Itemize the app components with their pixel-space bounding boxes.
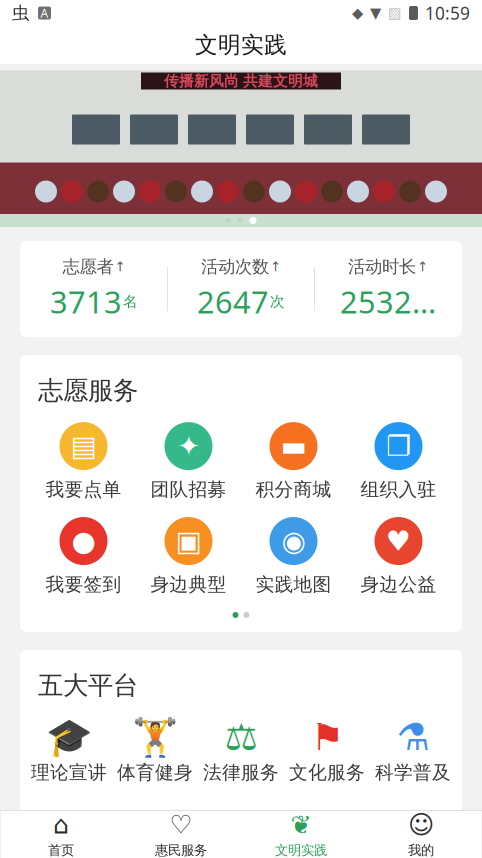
staticText: ▤	[70, 430, 96, 462]
staticText: ✦	[177, 430, 200, 462]
staticText: 理论宣讲	[31, 761, 107, 784]
staticText: 组织入驻	[360, 478, 436, 501]
staticText: 次	[270, 293, 285, 311]
button[interactable]: ⌂	[1, 811, 121, 858]
button[interactable]: 活动次数	[168, 256, 314, 322]
staticText: 志愿者	[62, 256, 113, 277]
staticText: 文化服务	[289, 761, 365, 784]
staticText: ▼	[370, 5, 381, 21]
button[interactable]: ⚖	[198, 719, 284, 784]
staticText: 传播新风尚 共建文明城	[164, 72, 318, 90]
button[interactable]: ◉	[241, 517, 346, 596]
button[interactable]: ⚗	[370, 719, 456, 784]
button[interactable]: ▤	[31, 422, 136, 501]
staticText: 文明实践	[275, 842, 327, 858]
staticText: 积分商城	[255, 478, 331, 501]
button[interactable]: ❦	[241, 811, 361, 858]
button[interactable]: ▣	[136, 517, 241, 596]
staticText: ↑	[270, 259, 281, 274]
staticText: ▬	[280, 430, 306, 462]
staticText: ↑	[417, 259, 428, 274]
staticText: ▣	[175, 525, 201, 557]
staticText: ◆	[352, 5, 363, 21]
staticText: 法律服务	[203, 761, 279, 784]
button[interactable]: ⚑	[284, 719, 370, 784]
staticText: 3713	[50, 281, 122, 322]
button[interactable]: 志愿者	[21, 256, 167, 322]
staticText: ❦	[290, 810, 311, 839]
button[interactable]: ▬	[241, 422, 346, 501]
staticText: 五大平台	[38, 670, 138, 701]
staticText: ⌂	[53, 810, 69, 839]
staticText: ◉	[281, 525, 305, 557]
button[interactable]: ✦	[136, 422, 241, 501]
staticText: 活动次数	[201, 256, 269, 277]
staticText: 实践地图	[255, 573, 331, 596]
button[interactable]: 🎓	[26, 719, 112, 784]
staticText: ↑	[114, 259, 125, 274]
button[interactable]: ☺	[361, 811, 481, 858]
button[interactable]: ●	[31, 517, 136, 596]
staticText: ⚗	[396, 716, 429, 758]
staticText: 名	[123, 293, 138, 311]
button[interactable]: Banner	[0, 64, 482, 227]
staticText: ♥	[386, 525, 411, 557]
staticText: ▨	[388, 5, 402, 21]
staticText: A	[40, 5, 48, 21]
button[interactable]: 🏋	[112, 719, 198, 784]
staticText: ⚖	[224, 716, 257, 758]
staticText: 身边典型	[150, 573, 226, 596]
button[interactable]: ♥	[346, 517, 451, 596]
button[interactable]: ❐	[346, 422, 451, 501]
staticText: 我的	[408, 842, 434, 858]
staticText: 我要点单	[45, 478, 121, 501]
staticText: 身边公益	[360, 573, 436, 596]
staticText: 志愿服务	[38, 375, 138, 406]
staticText: 10:59	[425, 1, 470, 24]
staticText: ❐	[386, 430, 411, 462]
button[interactable]: 活动时长	[315, 256, 461, 322]
staticText: 体育健身	[117, 761, 193, 784]
staticText: ●	[71, 525, 95, 557]
staticText: 惠民服务	[155, 842, 207, 858]
staticText: 我要签到	[45, 573, 121, 596]
staticText: 🎓	[46, 716, 92, 758]
staticText: 科学普及	[375, 761, 451, 784]
staticText: 🏋	[132, 716, 178, 758]
staticText: ☺	[408, 810, 434, 839]
staticText: ♡	[169, 810, 192, 839]
staticText: 2647	[197, 281, 269, 322]
staticText: 2532...	[340, 281, 436, 322]
staticText: 首页	[48, 842, 74, 858]
staticText: ⚑	[310, 716, 343, 758]
button[interactable]: ♡	[121, 811, 241, 858]
staticText: 文明实践	[195, 31, 287, 59]
staticText: 团队招募	[150, 478, 226, 501]
staticText: 虫	[12, 2, 29, 24]
staticText: 活动时长	[348, 256, 416, 277]
